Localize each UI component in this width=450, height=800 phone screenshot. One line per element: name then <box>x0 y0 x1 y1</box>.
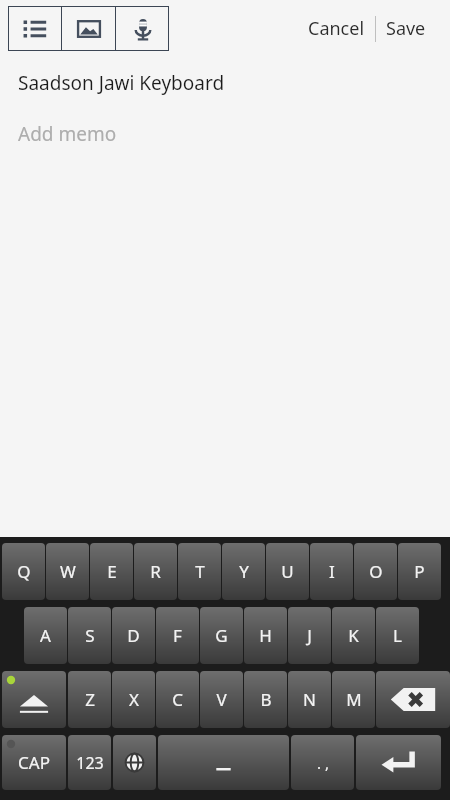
button[interactable]: Saadson Jawi Keyboard <box>0 57 450 109</box>
button[interactable]: D <box>112 607 155 664</box>
staticText: H <box>259 624 272 647</box>
button[interactable]: Add memo <box>0 109 450 537</box>
button[interactable]: P <box>398 543 441 600</box>
staticText: N <box>303 688 316 711</box>
staticText: U <box>281 560 294 583</box>
staticText: M <box>346 688 362 711</box>
button[interactable]: Q <box>2 543 45 600</box>
button[interactable]: E <box>90 543 133 600</box>
staticText: O <box>369 560 383 583</box>
staticText: W <box>60 560 76 583</box>
button[interactable]: U <box>266 543 309 600</box>
button[interactable]: Save <box>376 8 436 49</box>
button[interactable]: L <box>376 607 419 664</box>
button[interactable]: CAP <box>2 735 66 790</box>
staticText: X <box>129 688 139 711</box>
button[interactable]: Cancel <box>298 8 375 49</box>
staticText: Q <box>17 560 31 583</box>
button[interactable]: G <box>200 607 243 664</box>
button[interactable]: V <box>200 671 243 728</box>
button[interactable]: C <box>156 671 199 728</box>
button[interactable]: J <box>288 607 331 664</box>
button[interactable]: Insert image <box>62 6 115 51</box>
staticText: T <box>195 560 205 583</box>
button[interactable]: Y <box>222 543 265 600</box>
button[interactable]: R <box>134 543 177 600</box>
staticText: . , <box>317 753 329 773</box>
button[interactable]: Checklist <box>8 6 61 51</box>
button[interactable]: O <box>354 543 397 600</box>
staticText: B <box>260 688 272 711</box>
button[interactable]: . , <box>291 735 354 790</box>
button[interactable]: Enter <box>356 735 441 790</box>
button[interactable]: S <box>68 607 111 664</box>
button[interactable]: A <box>24 607 67 664</box>
staticText: C <box>172 688 183 711</box>
button[interactable]: 123 <box>68 735 111 790</box>
staticText: I <box>329 560 335 583</box>
button[interactable]: X <box>112 671 155 728</box>
staticText: K <box>348 624 359 647</box>
staticText: E <box>107 560 117 583</box>
staticText: Save <box>386 16 426 41</box>
button[interactable]: K <box>332 607 375 664</box>
button[interactable]: W <box>46 543 89 600</box>
staticText: F <box>173 624 182 647</box>
button[interactable]: Change language <box>113 735 156 790</box>
staticText: J <box>307 624 312 647</box>
staticText: Z <box>85 688 95 711</box>
staticText: G <box>215 624 228 647</box>
staticText: CAP <box>18 751 50 774</box>
staticText: R <box>150 560 161 583</box>
button[interactable]: Shift <box>2 671 66 728</box>
staticText: L <box>393 624 402 647</box>
staticText: D <box>127 624 140 647</box>
button[interactable]: Z <box>68 671 111 728</box>
button[interactable]: M <box>332 671 375 728</box>
button[interactable]: I <box>310 543 353 600</box>
staticText: P <box>414 560 425 583</box>
staticText: S <box>85 624 95 647</box>
button[interactable]: Voice record <box>116 6 169 51</box>
staticText: Cancel <box>308 16 365 41</box>
staticText: Add memo <box>18 121 117 147</box>
staticText: 123 <box>76 752 104 774</box>
button[interactable]: Backspace <box>376 671 450 728</box>
button[interactable]: Space <box>158 735 289 790</box>
staticText: Saadson Jawi Keyboard <box>18 70 225 96</box>
button[interactable]: B <box>244 671 287 728</box>
button[interactable]: H <box>244 607 287 664</box>
button[interactable]: T <box>178 543 221 600</box>
staticText: V <box>216 688 227 711</box>
button[interactable]: N <box>288 671 331 728</box>
staticText: Y <box>239 560 249 583</box>
button[interactable]: F <box>156 607 199 664</box>
staticText: A <box>40 624 51 647</box>
